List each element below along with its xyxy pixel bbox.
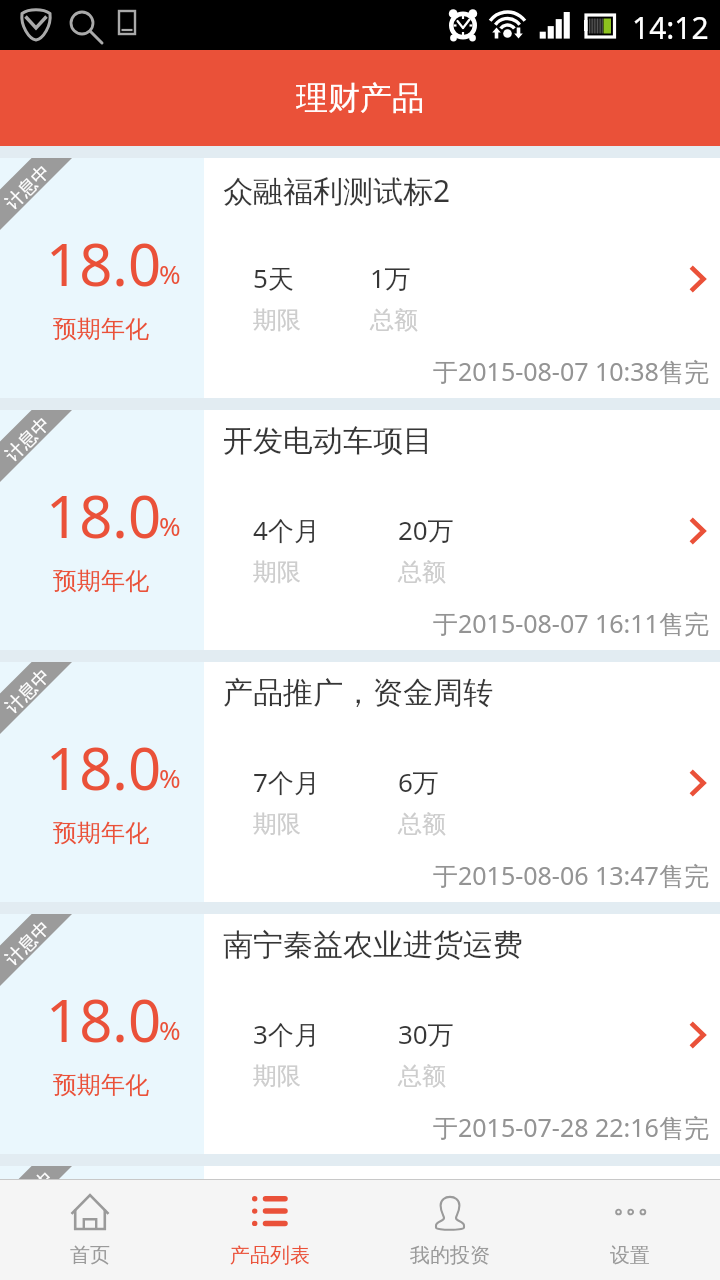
staticText: 期限 bbox=[253, 809, 301, 839]
staticText: 预期年化 bbox=[53, 314, 149, 344]
button[interactable]: 我的投资 bbox=[360, 1180, 540, 1280]
staticText: 众融福利测试标2 bbox=[223, 170, 451, 211]
staticText: 计息中 bbox=[4, 1167, 52, 1179]
button[interactable]: 计息中 bbox=[0, 662, 720, 902]
staticText: 南宁秦益农业进货运费 bbox=[223, 926, 523, 964]
staticText: 于2015-08-06 13:47售完 bbox=[433, 858, 709, 892]
staticText: 产品列表 bbox=[230, 1243, 310, 1268]
staticText: 设置 bbox=[610, 1243, 650, 1268]
staticText: 期限 bbox=[253, 1061, 301, 1091]
staticText: 5天 bbox=[253, 260, 294, 296]
staticText: 总额 bbox=[398, 1061, 446, 1091]
staticText: 计息中 bbox=[1, 916, 55, 971]
staticText: 总额 bbox=[398, 557, 446, 587]
staticText: 20万 bbox=[398, 512, 454, 548]
button[interactable]: 计息中 bbox=[0, 1166, 720, 1179]
staticText: 开发电动车项目 bbox=[223, 422, 433, 460]
staticText: 1万 bbox=[370, 260, 411, 296]
staticText: 4个月 bbox=[253, 512, 320, 548]
staticText: 产品推广，资金周转 bbox=[223, 674, 493, 712]
staticText: 期限 bbox=[253, 305, 301, 335]
staticText: 于2015-07-28 22:16售完 bbox=[433, 1110, 709, 1144]
other: 查看详情 bbox=[689, 265, 711, 293]
staticText: 14:12 bbox=[632, 7, 709, 48]
other: 查看详情 bbox=[689, 517, 711, 545]
staticText: 理财产品 bbox=[296, 78, 424, 118]
staticText: 期限 bbox=[253, 557, 301, 587]
staticText: 18.0 bbox=[46, 224, 162, 303]
staticText: % bbox=[159, 256, 181, 291]
button[interactable]: 计息中 bbox=[0, 158, 720, 398]
button[interactable]: 设置 bbox=[540, 1180, 720, 1280]
staticText: % bbox=[159, 1012, 181, 1047]
staticText: 7个月 bbox=[253, 764, 320, 800]
staticText: 预期年化 bbox=[53, 818, 149, 848]
staticText: % bbox=[159, 508, 181, 543]
staticText: 计息中 bbox=[1, 160, 55, 215]
other: 查看详情 bbox=[689, 1021, 711, 1049]
button[interactable]: 计息中 bbox=[0, 914, 720, 1154]
staticText: 我的投资 bbox=[410, 1243, 490, 1268]
staticText: 预期年化 bbox=[53, 1070, 149, 1100]
staticText: 3个月 bbox=[253, 1016, 320, 1052]
staticText: 18.0 bbox=[46, 728, 162, 807]
staticText: 6万 bbox=[398, 764, 439, 800]
staticText: 30万 bbox=[398, 1016, 454, 1052]
staticText: 预期年化 bbox=[53, 566, 149, 596]
staticText: 于2015-08-07 10:38售完 bbox=[433, 354, 709, 388]
staticText: 18.0 bbox=[46, 476, 162, 555]
staticText: % bbox=[159, 760, 181, 795]
staticText: 于2015-08-07 16:11售完 bbox=[433, 606, 709, 640]
staticText: 计息中 bbox=[1, 664, 55, 719]
staticText: 总额 bbox=[370, 305, 418, 335]
button[interactable]: 计息中 bbox=[0, 410, 720, 650]
button[interactable]: 首页 bbox=[0, 1180, 180, 1280]
other: 查看详情 bbox=[689, 769, 711, 797]
staticText: 总额 bbox=[398, 809, 446, 839]
staticText: 18.0 bbox=[46, 980, 162, 1059]
button[interactable]: 产品列表 bbox=[180, 1180, 360, 1280]
staticText: 计息中 bbox=[1, 412, 55, 467]
staticText: 首页 bbox=[70, 1243, 110, 1268]
